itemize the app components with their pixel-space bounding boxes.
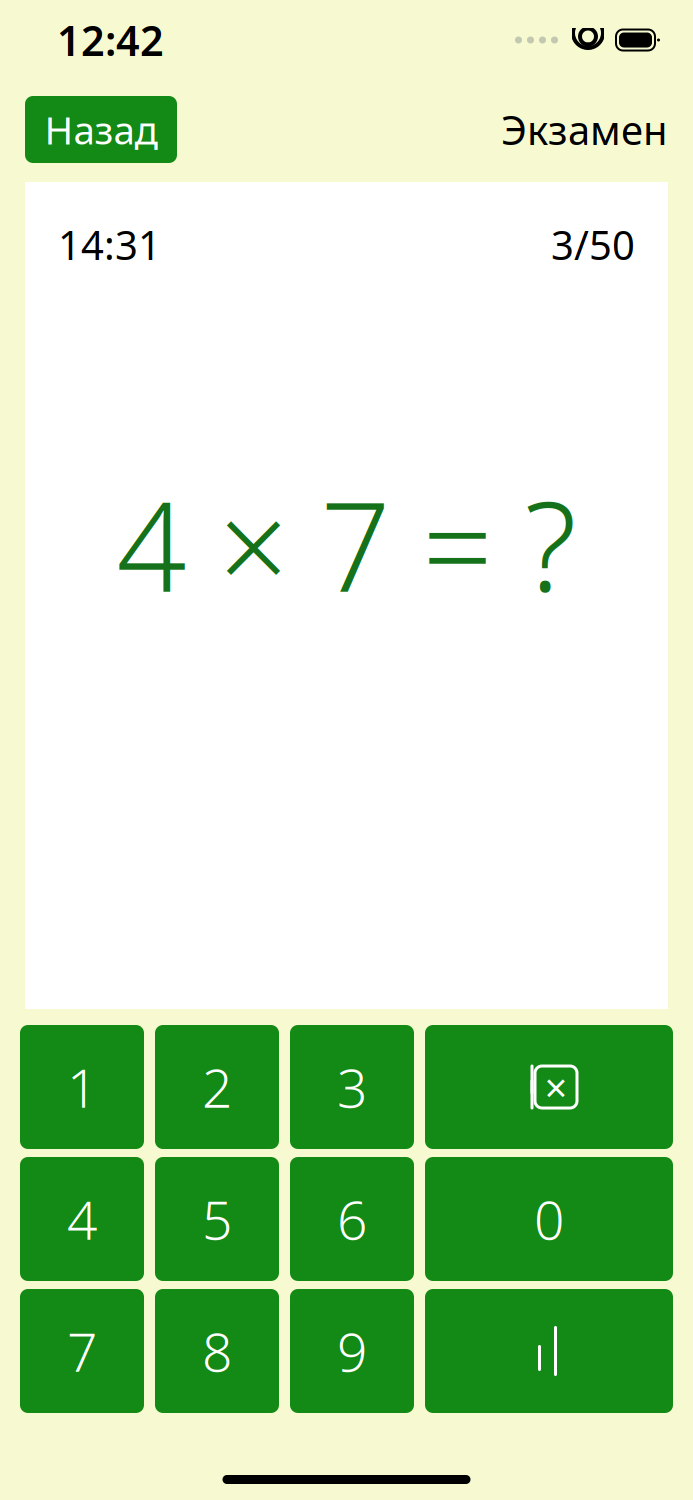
staticText: 1 <box>67 1052 97 1122</box>
button[interactable]: 9 <box>290 1289 414 1413</box>
button[interactable]: Submit answer <box>425 1289 673 1413</box>
staticText: 14:31 <box>58 218 161 271</box>
button[interactable]: 0 <box>425 1157 673 1281</box>
staticText: 5 <box>202 1184 232 1254</box>
staticText: 4 <box>67 1184 97 1254</box>
button[interactable]: Delete <box>425 1025 673 1149</box>
staticText: 3/50 <box>551 218 635 271</box>
staticText: × <box>544 1060 567 1113</box>
staticText: 3 <box>337 1052 367 1122</box>
staticText: 2 <box>202 1052 232 1122</box>
button[interactable]: 1 <box>20 1025 144 1149</box>
button[interactable]: 5 <box>155 1157 279 1281</box>
button[interactable]: Назад <box>25 96 177 163</box>
staticText: 12:42 <box>57 13 164 67</box>
staticText: 6 <box>337 1184 367 1254</box>
button[interactable]: 6 <box>290 1157 414 1281</box>
staticText: 4 × 7 = ? <box>116 463 576 626</box>
staticText: 8 <box>202 1316 232 1386</box>
staticText: Назад <box>44 104 157 155</box>
button[interactable]: 8 <box>155 1289 279 1413</box>
button[interactable]: 7 <box>20 1289 144 1413</box>
staticText: 9 <box>337 1316 367 1386</box>
button[interactable]: 2 <box>155 1025 279 1149</box>
staticText: 0 <box>534 1184 564 1254</box>
staticText: Экзамен <box>501 103 668 156</box>
staticText: 7 <box>67 1316 97 1386</box>
button[interactable]: 3 <box>290 1025 414 1149</box>
button[interactable]: 4 <box>20 1157 144 1281</box>
